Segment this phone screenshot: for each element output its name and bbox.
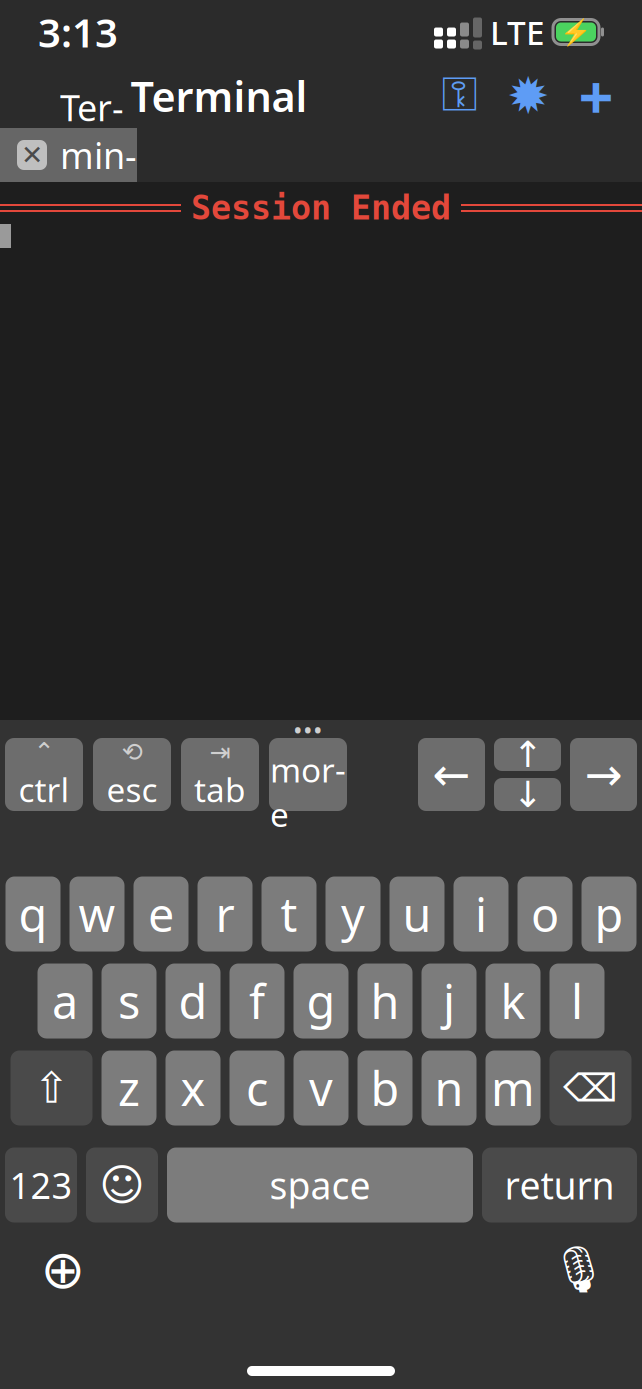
- button[interactable]: ⇥: [181, 738, 259, 811]
- staticText: ⚡: [560, 17, 592, 46]
- staticText: l: [571, 970, 583, 1032]
- button[interactable]: Right arrow: [570, 738, 637, 811]
- button[interactable]: Next keyboard: [32, 1238, 94, 1300]
- button[interactable]: Left arrow: [418, 738, 485, 811]
- staticText: Session Ended: [191, 189, 451, 227]
- button[interactable]: i: [453, 876, 508, 951]
- button[interactable]: y: [325, 876, 380, 951]
- staticText: ⚿: [441, 73, 478, 119]
- button[interactable]: w: [69, 876, 124, 951]
- button[interactable]: ✕: [0, 128, 137, 182]
- button[interactable]: l: [549, 963, 604, 1038]
- button[interactable]: g: [293, 963, 348, 1038]
- button[interactable]: Keys: [438, 70, 482, 122]
- button[interactable]: r: [197, 876, 252, 951]
- staticText: g: [306, 970, 335, 1032]
- staticText: k: [500, 970, 525, 1032]
- staticText: u: [402, 883, 431, 945]
- button[interactable]: e: [133, 876, 188, 951]
- staticText: w: [78, 883, 115, 945]
- staticText: h: [370, 970, 399, 1032]
- button[interactable]: space: [167, 1147, 473, 1222]
- button[interactable]: f: [229, 963, 284, 1038]
- button[interactable]: ⟲: [93, 738, 171, 811]
- button[interactable]: d: [165, 963, 220, 1038]
- staticText: x: [180, 1057, 205, 1119]
- staticText: more: [270, 748, 346, 836]
- button[interactable]: u: [389, 876, 444, 951]
- staticText: b: [370, 1057, 399, 1119]
- button[interactable]: z: [101, 1050, 156, 1125]
- staticText: ←: [432, 749, 470, 800]
- staticText: ⌃: [33, 737, 54, 766]
- staticText: return: [504, 1160, 614, 1210]
- staticText: Terminal: [130, 69, 307, 123]
- staticText: c: [246, 1057, 268, 1119]
- button[interactable]: return: [482, 1147, 637, 1222]
- button[interactable]: 123: [5, 1147, 77, 1222]
- button[interactable]: New Terminal: [574, 70, 618, 122]
- staticText: r: [215, 883, 234, 945]
- button[interactable]: Shift: [10, 1050, 92, 1125]
- staticText: z: [118, 1057, 140, 1119]
- staticText: d: [178, 970, 207, 1032]
- button[interactable]: h: [357, 963, 412, 1038]
- button[interactable]: ⌃: [5, 738, 83, 811]
- staticText: ✕: [21, 140, 43, 170]
- staticText: y: [341, 883, 365, 945]
- button[interactable]: o: [517, 876, 572, 951]
- button[interactable]: Down arrow: [494, 778, 561, 811]
- staticText: 123: [9, 1161, 72, 1209]
- button[interactable]: a: [37, 963, 92, 1038]
- button[interactable]: b: [357, 1050, 412, 1125]
- staticText: ✹: [507, 67, 549, 125]
- staticText: •••: [293, 713, 323, 746]
- staticText: +: [578, 55, 613, 137]
- button[interactable]: j: [421, 963, 476, 1038]
- staticText: a: [52, 970, 78, 1032]
- button[interactable]: •••: [269, 738, 347, 811]
- staticText: ctrl: [18, 767, 69, 811]
- staticText: p: [594, 883, 623, 945]
- button[interactable]: c: [229, 1050, 284, 1125]
- button[interactable]: Settings: [506, 70, 550, 122]
- button[interactable]: t: [261, 876, 316, 951]
- staticText: Terminal: [60, 83, 137, 227]
- staticText: j: [443, 970, 455, 1032]
- button[interactable]: Up arrow: [494, 738, 561, 771]
- button[interactable]: q: [5, 876, 60, 951]
- staticText: o: [531, 883, 559, 945]
- button[interactable]: x: [165, 1050, 220, 1125]
- staticText: v: [309, 1057, 333, 1119]
- staticText: s: [118, 970, 140, 1032]
- button[interactable]: s: [101, 963, 156, 1038]
- button[interactable]: p: [581, 876, 636, 951]
- button[interactable]: k: [485, 963, 540, 1038]
- staticText: ⇥: [209, 737, 230, 766]
- button[interactable]: Delete: [549, 1050, 631, 1125]
- staticText: ↑: [512, 734, 542, 775]
- button[interactable]: n: [421, 1050, 476, 1125]
- staticText: ↓: [512, 774, 542, 815]
- button[interactable]: v: [293, 1050, 348, 1125]
- staticText: f: [249, 970, 265, 1032]
- staticText: t: [280, 883, 297, 945]
- staticText: →: [584, 749, 622, 800]
- staticText: ⟲: [121, 737, 142, 766]
- staticText: 🎙: [550, 1244, 608, 1295]
- staticText: n: [434, 1057, 463, 1119]
- staticText: LTE: [490, 10, 545, 54]
- staticText: ☺: [99, 1160, 145, 1210]
- staticText: q: [18, 883, 47, 945]
- staticText: e: [148, 883, 174, 945]
- button[interactable]: m: [485, 1050, 540, 1125]
- staticText: ⊕: [40, 1239, 85, 1300]
- staticText: space: [269, 1160, 370, 1210]
- staticText: tab: [194, 767, 246, 811]
- staticText: m: [491, 1057, 535, 1119]
- staticText: ⌫: [563, 1066, 618, 1110]
- button[interactable]: Emoji: [86, 1147, 158, 1222]
- staticText: ⇧: [33, 1064, 69, 1112]
- button[interactable]: Dictate: [548, 1238, 610, 1300]
- staticText: 3:13: [38, 5, 118, 58]
